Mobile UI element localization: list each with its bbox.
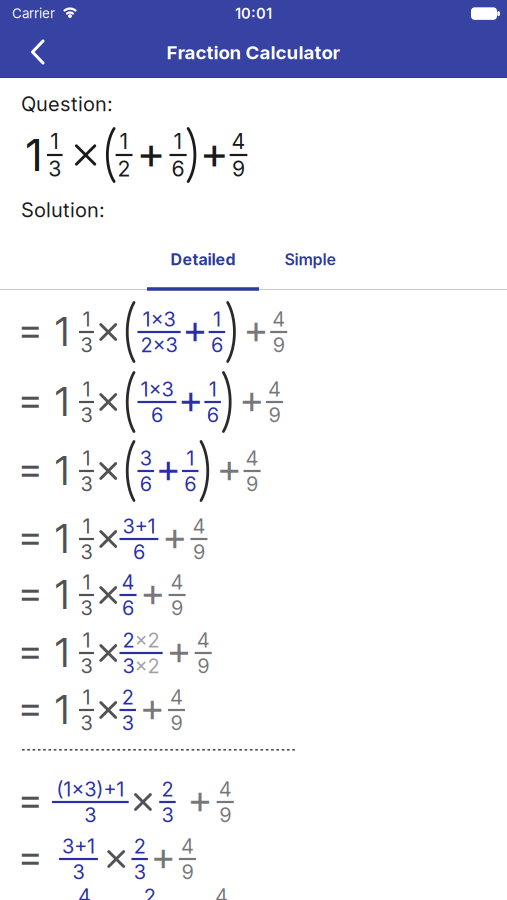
staticText: 4 bbox=[219, 777, 232, 801]
staticText: 4 bbox=[215, 884, 228, 900]
button[interactable]: Back bbox=[20, 29, 55, 75]
staticText: 1×3 bbox=[143, 307, 176, 331]
staticText: = bbox=[18, 514, 42, 560]
staticText: 3 bbox=[122, 711, 134, 735]
staticText: 1 bbox=[55, 630, 69, 676]
staticText: 6 bbox=[151, 403, 163, 427]
staticText: 3 bbox=[80, 472, 92, 496]
staticText: 1 bbox=[55, 516, 69, 562]
staticText: 2 bbox=[118, 156, 131, 181]
staticText: 6 bbox=[133, 540, 145, 564]
staticText: 1 bbox=[55, 309, 69, 355]
staticText: Simple bbox=[284, 250, 335, 269]
staticText: 1 bbox=[82, 570, 90, 594]
staticText: 1 bbox=[186, 446, 194, 470]
staticText: 3 bbox=[80, 403, 92, 427]
staticText: 3 bbox=[80, 654, 92, 678]
staticText: 3+1 bbox=[62, 834, 95, 858]
staticText: 9 bbox=[273, 333, 285, 357]
staticText: 4 bbox=[181, 834, 194, 858]
staticText: 3 bbox=[140, 446, 152, 470]
staticText: + bbox=[140, 685, 164, 731]
staticText: 3 bbox=[123, 654, 135, 678]
staticText: Detailed bbox=[170, 250, 235, 269]
staticText: 3 bbox=[134, 860, 146, 884]
staticText: 4 bbox=[268, 377, 281, 401]
staticText: 2×3 bbox=[141, 333, 178, 357]
staticText: 9 bbox=[246, 472, 258, 496]
staticText: 3 bbox=[161, 803, 173, 827]
staticText: ×2 bbox=[135, 628, 160, 652]
staticText: + bbox=[156, 446, 180, 492]
staticText: 6 bbox=[207, 403, 219, 427]
staticText: = bbox=[18, 685, 42, 731]
staticText: 9 bbox=[219, 803, 231, 827]
staticText: + bbox=[136, 127, 165, 179]
staticText: 1 bbox=[213, 307, 221, 331]
staticText: + bbox=[167, 628, 191, 674]
staticText: 10:01 bbox=[235, 5, 272, 22]
staticText: 9 bbox=[193, 540, 205, 564]
staticText: 3 bbox=[48, 156, 61, 181]
staticText: 4 bbox=[121, 570, 134, 594]
staticText: 1×3 bbox=[140, 377, 173, 401]
staticText: 9 bbox=[197, 654, 209, 678]
staticText: 4 bbox=[231, 129, 245, 154]
staticText: 1 bbox=[50, 129, 59, 154]
staticText: = bbox=[18, 777, 42, 823]
staticText: 1 bbox=[82, 685, 90, 709]
staticText: 6 bbox=[140, 472, 152, 496]
staticText: + bbox=[244, 307, 268, 353]
staticText: 1 bbox=[55, 379, 69, 425]
staticText: 3 bbox=[80, 596, 92, 620]
staticText: 3 bbox=[80, 540, 92, 564]
staticText: = bbox=[18, 834, 42, 880]
staticText: 1 bbox=[82, 446, 90, 470]
staticText: 1 bbox=[82, 307, 90, 331]
staticText: 3 bbox=[72, 860, 84, 884]
staticText: 1 bbox=[82, 514, 90, 538]
staticText: (1×3)+1 bbox=[56, 777, 124, 801]
staticText: 4 bbox=[171, 570, 184, 594]
staticText: 1 bbox=[25, 129, 43, 181]
staticText: 4 bbox=[197, 628, 210, 652]
staticText: 4 bbox=[246, 446, 259, 470]
staticText: 6 bbox=[184, 472, 196, 496]
staticText: Fraction Calculator bbox=[166, 41, 340, 63]
staticText: + bbox=[178, 377, 202, 423]
staticText: + bbox=[188, 777, 212, 823]
staticText: + bbox=[217, 446, 241, 492]
staticText: = bbox=[18, 446, 42, 492]
staticText: 1 bbox=[55, 448, 69, 494]
staticText: + bbox=[140, 570, 164, 616]
staticText: + bbox=[151, 834, 175, 880]
staticText: Carrier bbox=[12, 6, 55, 21]
staticText: 4 bbox=[170, 685, 183, 709]
staticText: 6 bbox=[211, 333, 223, 357]
staticText: 1 bbox=[82, 377, 90, 401]
staticText: 1 bbox=[120, 129, 129, 154]
staticText: 6 bbox=[122, 596, 134, 620]
staticText: 4 bbox=[192, 514, 205, 538]
staticText: 3 bbox=[80, 333, 92, 357]
staticText: 2 bbox=[122, 685, 134, 709]
staticText: 2 bbox=[123, 628, 135, 652]
staticText: = bbox=[18, 307, 42, 353]
staticText: 1 bbox=[55, 687, 69, 733]
staticText: 2 bbox=[134, 834, 146, 858]
staticText: 9 bbox=[181, 860, 193, 884]
staticText: + bbox=[162, 514, 186, 560]
staticText: + bbox=[239, 377, 263, 423]
staticText: 9 bbox=[232, 156, 245, 181]
staticText: 1 bbox=[55, 572, 69, 618]
staticText: 1 bbox=[209, 377, 217, 401]
staticText: 3 bbox=[84, 803, 96, 827]
staticText: 3 bbox=[80, 711, 92, 735]
button[interactable]: Detailed bbox=[147, 239, 259, 279]
staticText: + bbox=[183, 307, 207, 353]
button[interactable]: Simple bbox=[260, 239, 360, 279]
staticText: 1 bbox=[174, 129, 183, 154]
staticText: Question: bbox=[21, 92, 113, 116]
